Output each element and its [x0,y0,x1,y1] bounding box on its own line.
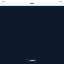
button[interactable]: Back [0,2,3,5]
button[interactable]: More options [61,2,64,5]
button[interactable] [27,59,37,62]
